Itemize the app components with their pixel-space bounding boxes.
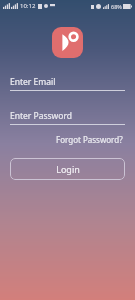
staticText: Enter Password — [10, 110, 73, 122]
staticText: Forgot Password? — [56, 134, 123, 145]
button[interactable]: Forgot Password? — [54, 132, 125, 147]
button[interactable]: Login — [10, 158, 125, 180]
staticText: Enter Email — [10, 76, 56, 88]
button[interactable]: Enter Email — [10, 76, 125, 91]
staticText: 10:12 — [20, 2, 36, 10]
staticText: Login — [56, 163, 80, 175]
staticText: 68% — [111, 3, 122, 10]
button[interactable]: Enter Password — [10, 110, 125, 125]
